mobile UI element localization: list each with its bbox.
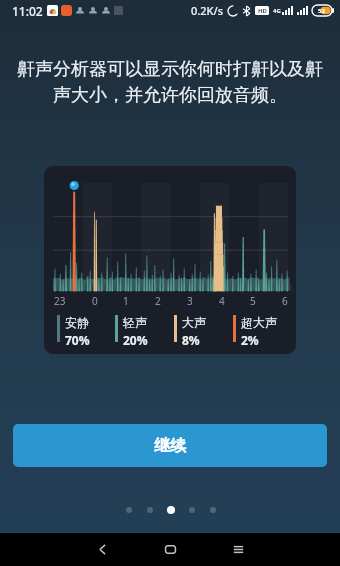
- staticText: 6: [282, 294, 288, 308]
- staticText: 0: [92, 294, 98, 308]
- staticText: 鼾声分析器可以显示你何时打鼾以及鼾 声大小，并允许你回放音频。: [17, 58, 323, 107]
- staticText: HD: [258, 7, 267, 15]
- button[interactable]: Back: [82, 533, 122, 566]
- staticText: 52: [318, 7, 325, 15]
- staticText: 轻声: [123, 315, 147, 330]
- staticText: 11:02: [12, 3, 43, 19]
- staticText: 2%: [241, 332, 259, 348]
- button[interactable]: Home: [150, 533, 190, 566]
- staticText: 大声: [182, 315, 206, 330]
- staticText: 1: [123, 294, 129, 308]
- staticText: 4G: [273, 7, 281, 15]
- staticText: 继续: [154, 436, 186, 456]
- staticText: 3: [187, 294, 193, 308]
- staticText: 20%: [123, 332, 148, 348]
- staticText: 5: [250, 294, 256, 308]
- button[interactable]: Recent apps: [218, 533, 258, 566]
- staticText: 2: [155, 294, 161, 308]
- staticText: 0.2K/s: [191, 3, 224, 18]
- staticText: 23: [54, 294, 66, 308]
- staticText: 8%: [182, 332, 200, 348]
- staticText: 70%: [65, 332, 90, 348]
- staticText: 安静: [65, 315, 89, 330]
- staticText: 4: [219, 294, 225, 308]
- button[interactable]: 继续: [13, 424, 327, 467]
- staticText: 超大声: [241, 315, 277, 330]
